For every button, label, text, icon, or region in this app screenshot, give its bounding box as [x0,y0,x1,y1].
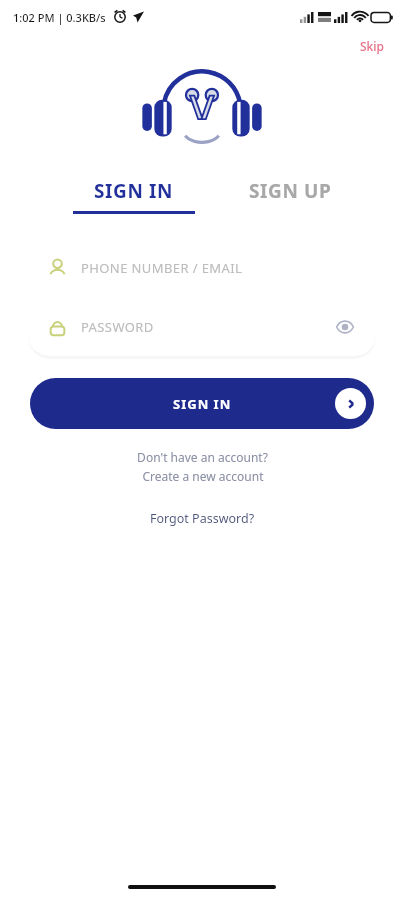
staticText: Create a new account [142,468,264,484]
staticText: SIGN IN [94,178,174,204]
staticText: Don't have an account? [137,449,268,465]
staticText: PHONE NUMBER / EMAIL [81,259,243,277]
button[interactable]: Don't have an account? [121,447,284,486]
button[interactable]: Skip [352,34,392,58]
button[interactable]: SIGN IN [30,378,374,429]
button[interactable]: Forgot Password? [134,506,271,531]
button[interactable]: SIGN IN [67,178,201,214]
staticText: Skip [360,38,384,54]
button[interactable]: PHONE NUMBER / EMAIL [28,238,376,297]
button[interactable]: PASSWORD [28,297,376,356]
staticText: PASSWORD [81,318,154,336]
other: Continue [335,388,366,419]
staticText: SIGN IN [173,395,232,413]
button[interactable]: SIGN UP [243,178,338,204]
staticText: SIGN UP [249,178,332,204]
button[interactable]: Show password [332,317,358,337]
staticText: Forgot Password? [150,510,255,527]
staticText: 1:02 PM | 0.3KB/s [13,10,106,25]
